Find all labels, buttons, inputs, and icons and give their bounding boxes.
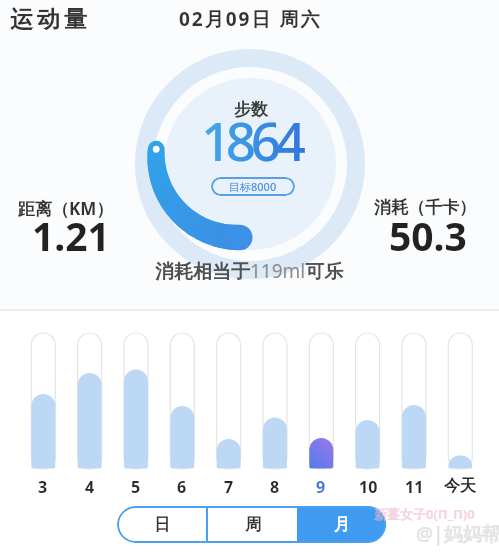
staticText: 1.21 (32, 209, 110, 262)
staticText: 消耗相当于119ml可乐 (155, 258, 344, 284)
button[interactable]: 月 (297, 506, 386, 543)
staticText: 5 (131, 476, 141, 498)
staticText: 50.3 (389, 209, 467, 262)
staticText: 日 (154, 515, 170, 535)
staticText: 新薹女子0(Π_Π)0 (374, 505, 475, 523)
staticText: 目标8000 (229, 179, 277, 194)
staticText: 距离（KM） (18, 197, 114, 220)
staticText: 消耗（千卡） (374, 197, 476, 218)
staticText: 11 (405, 476, 424, 498)
button[interactable]: 周 (208, 506, 297, 543)
button[interactable]: 日 (117, 506, 206, 543)
staticText: 4 (85, 476, 95, 498)
staticText: 8 (270, 476, 280, 498)
staticText: 月 (334, 515, 350, 535)
staticText: 10 (359, 476, 378, 498)
staticText: 6 (177, 476, 187, 498)
button[interactable]: 目标8000 (211, 177, 295, 196)
staticText: 9 (316, 476, 326, 498)
staticText: 1864 (201, 104, 301, 176)
staticText: 7 (224, 476, 234, 498)
staticText: 周 (245, 515, 261, 535)
staticText: @|妈妈帮 (416, 521, 499, 547)
staticText: 3 (38, 476, 48, 498)
staticText: 今天 (444, 476, 476, 496)
staticText: 运动量 (8, 5, 89, 34)
staticText: 步数 (234, 99, 268, 120)
staticText: 02月09日 周六 (179, 6, 322, 32)
